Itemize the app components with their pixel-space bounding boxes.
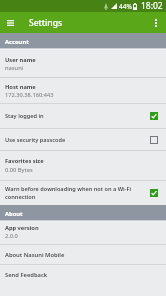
staticText: About Nasuni Mobile [5, 251, 65, 259]
staticText: Stay logged in [5, 112, 144, 120]
button[interactable]: Send Feedback [0, 265, 166, 285]
staticText: 2.0.0 [5, 232, 18, 240]
staticText: 18:02 [141, 0, 163, 12]
staticText: User name [5, 56, 36, 64]
staticText: 172.30.38.160:443 [5, 91, 54, 99]
button[interactable]: Use security passcode [0, 129, 166, 150]
staticText: Use security passcode [5, 136, 144, 144]
staticText: Settings [29, 17, 63, 29]
staticText: nasuni [5, 64, 24, 72]
button[interactable]: Favorites size [0, 151, 166, 180]
button[interactable]: Stay logged in [0, 104, 166, 128]
button[interactable]: More options [145, 12, 166, 33]
staticText: Host name [5, 83, 36, 91]
staticText: 44% [119, 2, 132, 11]
staticText: Send Feedback [5, 271, 48, 279]
button[interactable]: App version [0, 222, 166, 244]
button[interactable]: Open navigation drawer [0, 12, 21, 33]
button[interactable]: User name [0, 50, 166, 77]
staticText: App version [5, 224, 39, 232]
button[interactable]: Host name [0, 78, 166, 103]
staticText: Warn before downloading when not on a Wi… [5, 185, 144, 201]
button[interactable]: Warn before downloading when not on a Wi… [0, 181, 166, 205]
staticText: Account [5, 38, 29, 46]
button[interactable]: About Nasuni Mobile [0, 245, 166, 264]
staticText: About [5, 210, 23, 218]
staticText: Favorites size [5, 157, 44, 165]
staticText: 0.00 Bytes [5, 166, 33, 174]
